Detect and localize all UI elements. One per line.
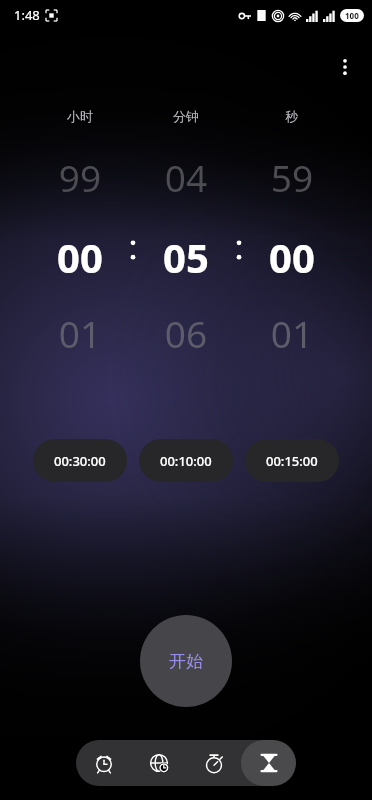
staticText: 1:48 — [14, 6, 40, 24]
button[interactable]: Alarm — [76, 740, 131, 786]
button[interactable]: 00:10:00 — [139, 439, 233, 482]
button[interactable]: 秒 — [239, 108, 345, 358]
staticText: 秒 — [239, 108, 345, 124]
staticText: 00 — [239, 230, 345, 284]
staticText: 06 — [133, 308, 239, 358]
staticText: 01 — [239, 308, 345, 358]
button[interactable]: More options — [324, 46, 366, 88]
button[interactable]: 00:30:00 — [33, 439, 127, 482]
staticText: 04 — [133, 152, 239, 202]
button[interactable]: World clock — [131, 740, 186, 786]
staticText: 分钟 — [133, 108, 239, 124]
staticText: 小时 — [27, 108, 133, 124]
button[interactable]: Stopwatch — [186, 740, 241, 786]
staticText: 01 — [27, 308, 133, 358]
staticText: 00:15:00 — [266, 452, 318, 470]
staticText: 05 — [133, 230, 239, 284]
staticText: 开始 — [169, 651, 203, 672]
button[interactable]: 分钟 — [133, 108, 239, 358]
staticText: 00:10:00 — [160, 452, 212, 470]
staticText: 59 — [239, 152, 345, 202]
staticText: 99 — [27, 152, 133, 202]
button[interactable]: 小时 — [27, 108, 133, 358]
button[interactable]: 00:15:00 — [245, 439, 339, 482]
button[interactable]: 开始 — [140, 615, 232, 707]
staticText: 100 — [345, 10, 359, 21]
staticText: 00:30:00 — [54, 452, 106, 470]
staticText: 00 — [27, 230, 133, 284]
button[interactable]: Timer — [241, 740, 296, 786]
